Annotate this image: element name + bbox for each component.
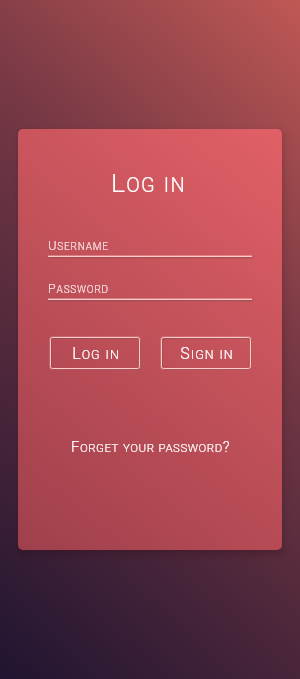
staticText: USERNAME: [48, 238, 109, 253]
staticText: LOG IN: [111, 167, 186, 198]
staticText: PASSWORD: [48, 281, 109, 296]
button[interactable]: LOG IN: [50, 337, 141, 370]
button[interactable]: USERNAME: [48, 238, 252, 259]
staticText: FORGET YOUR PASSWORD?: [71, 438, 230, 456]
button[interactable]: PASSWORD: [48, 281, 252, 302]
staticText: LOG IN: [72, 344, 120, 363]
staticText: SIGN IN: [180, 344, 234, 363]
button[interactable]: FORGET YOUR PASSWORD?: [63, 433, 238, 461]
button[interactable]: SIGN IN: [161, 337, 252, 370]
